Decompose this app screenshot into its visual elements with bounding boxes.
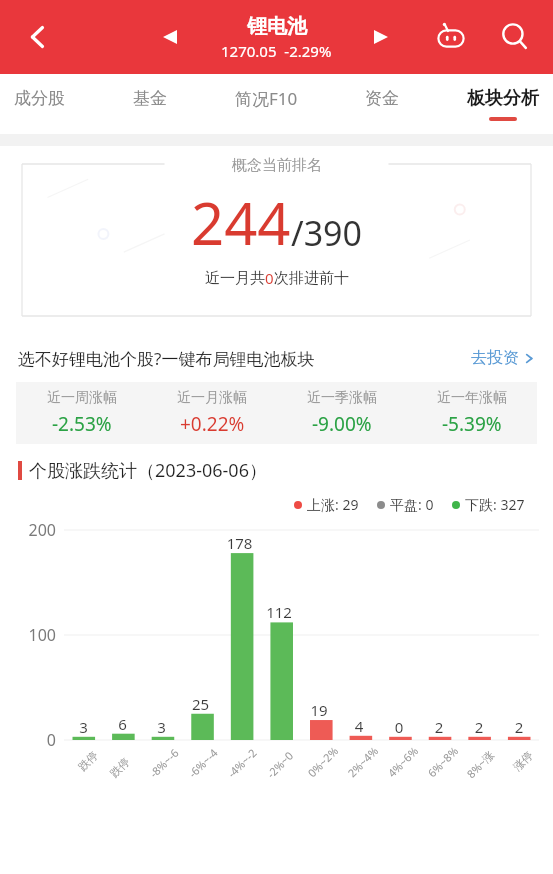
staticText: 2 <box>499 717 539 737</box>
staticText: 近一年涨幅 <box>437 389 507 407</box>
button[interactable]: 简况F10 <box>235 74 298 134</box>
staticText: 涨停 <box>510 748 536 774</box>
staticText: 0 <box>265 268 274 288</box>
staticText: -8%~-6% <box>146 743 185 781</box>
button[interactable]: 板块分析 <box>467 74 539 134</box>
staticText: 0%~2% <box>304 743 342 780</box>
staticText: +0.22% <box>180 411 245 437</box>
button[interactable]: Previous <box>148 15 192 59</box>
staticText: 4 <box>339 716 379 736</box>
staticText: -4%~-2% <box>224 743 263 781</box>
staticText: 100 <box>12 624 56 646</box>
staticText: 跌停 <box>75 748 101 774</box>
button[interactable]: Search <box>489 11 541 63</box>
staticText: 4%~6% <box>384 743 422 780</box>
staticText: 6%~8% <box>424 743 462 780</box>
staticText: 19 <box>299 700 339 720</box>
staticText: 0 <box>12 729 56 751</box>
button[interactable]: 近一年涨幅 <box>407 389 537 437</box>
staticText: 178 <box>220 533 259 553</box>
staticText: 112 <box>259 602 299 622</box>
staticText: 25 <box>181 694 220 714</box>
staticText: 近一月共 <box>205 269 265 288</box>
button[interactable]: Back <box>10 9 66 65</box>
staticText: 个股涨跌统计（2023-06-06） <box>29 458 267 483</box>
staticText: 资金 <box>365 88 399 109</box>
staticText: 6 <box>103 714 142 734</box>
button[interactable]: 基金 <box>133 74 167 134</box>
staticText: 2 <box>419 717 459 737</box>
staticText: 近一季涨幅 <box>307 389 377 407</box>
staticText: -2%~0% <box>263 742 303 782</box>
button[interactable]: 资金 <box>365 74 399 134</box>
button[interactable]: 选不好锂电池个股?一键布局锂电池板块 <box>0 334 553 382</box>
staticText: 3 <box>64 717 103 737</box>
staticText: 2 <box>459 717 499 737</box>
staticText: 板块分析 <box>467 87 539 110</box>
button[interactable]: 近一月涨幅 <box>147 389 277 437</box>
staticText: 概念当前排名 <box>232 156 322 175</box>
staticText: -5.39% <box>442 411 502 437</box>
staticText: 200 <box>12 519 56 541</box>
staticText: 次排进前十 <box>274 269 349 288</box>
staticText: 3 <box>142 717 181 737</box>
button[interactable]: 成分股 <box>14 74 65 134</box>
button[interactable]: 近一季涨幅 <box>277 389 407 437</box>
staticText: 0 <box>379 717 419 737</box>
button[interactable]: 近一周涨幅 <box>16 389 147 437</box>
button[interactable]: AI assistant <box>427 13 475 61</box>
staticText: 成分股 <box>14 88 65 109</box>
staticText: 近一周涨幅 <box>47 389 117 407</box>
staticText: 244 <box>191 183 291 262</box>
staticText: 简况F10 <box>235 87 298 110</box>
staticText: 基金 <box>133 88 167 109</box>
staticText: -2.53% <box>52 411 112 437</box>
staticText: 选不好锂电池个股?一键布局锂电池板块 <box>18 347 315 370</box>
staticText: 平盘: 0 <box>390 495 434 514</box>
staticText: -9.00% <box>312 411 372 437</box>
staticText: -6%~-4% <box>185 743 224 781</box>
button[interactable]: Next <box>359 15 403 59</box>
staticText: 锂电池 <box>247 14 307 39</box>
staticText: 上涨: 29 <box>307 495 359 514</box>
staticText: 下跌: 327 <box>465 495 525 514</box>
staticText: 跌停~-8% <box>107 743 146 781</box>
staticText: 去投资 <box>471 348 519 368</box>
staticText: 8%~涨停 <box>463 742 503 782</box>
staticText: /390 <box>291 210 362 256</box>
staticText: 2%~4% <box>344 743 382 780</box>
staticText: 1270.05 -2.29% <box>221 41 332 61</box>
staticText: 近一月涨幅 <box>177 389 247 407</box>
